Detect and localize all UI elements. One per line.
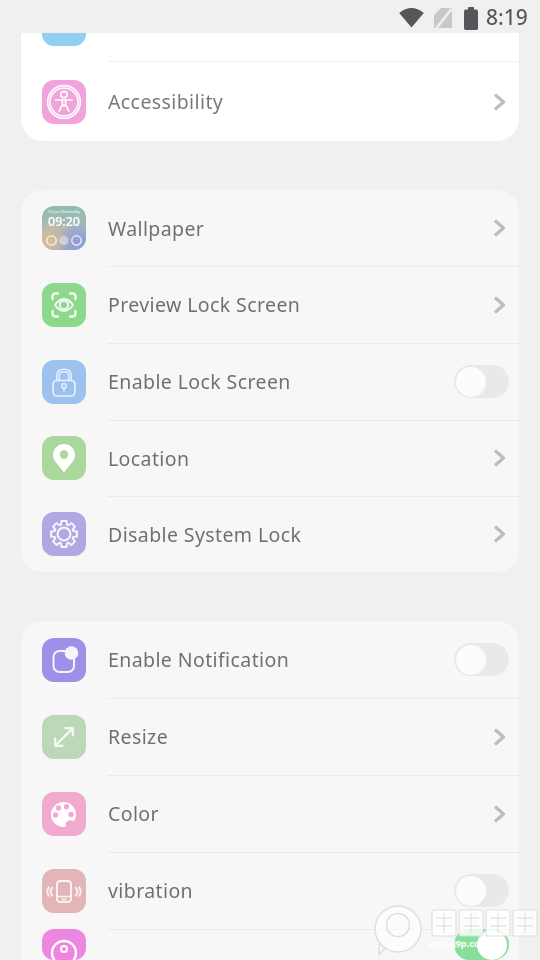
- staticText: Preview Lock Screen: [108, 291, 301, 318]
- button[interactable]: Disable System Lock: [21, 496, 519, 572]
- button[interactable]: Color: [21, 775, 519, 852]
- staticText: Wallpaper: [108, 215, 205, 242]
- button[interactable]: Enable Lock Screen: [21, 343, 519, 420]
- staticText: Enable Lock Screen: [108, 368, 291, 395]
- button[interactable]: Enable Notification: [21, 621, 519, 698]
- staticText: vibration: [108, 877, 194, 904]
- button[interactable]: Location: [21, 420, 519, 496]
- button[interactable]: [21, 929, 519, 960]
- staticText: Resize: [108, 723, 169, 750]
- button[interactable]: 09:20: [21, 190, 519, 266]
- staticText: Color: [108, 800, 160, 827]
- button[interactable]: Accessibility: [21, 62, 519, 141]
- staticText: Disable System Lock: [108, 521, 302, 548]
- staticText: www.j9p.com: [428, 937, 489, 949]
- staticText: Location: [108, 445, 190, 472]
- button[interactable]: vibration: [21, 852, 519, 929]
- button[interactable]: Resize: [21, 698, 519, 775]
- staticText: 09:20: [48, 213, 81, 230]
- button[interactable]: Preview Lock Screen: [21, 266, 519, 343]
- staticText: Enable Notification: [108, 646, 290, 673]
- staticText: 8:19: [486, 3, 528, 32]
- staticText: 22 June Wednesday: [48, 209, 81, 214]
- staticText: Accessibility: [108, 88, 224, 115]
